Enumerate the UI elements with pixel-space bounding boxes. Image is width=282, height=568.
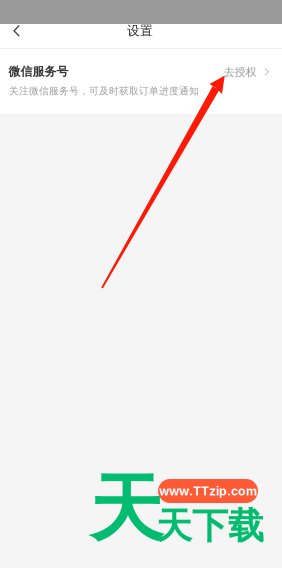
- staticText: 微信服务号: [8, 64, 68, 79]
- button[interactable]: 微信服务号: [0, 49, 282, 114]
- staticText: 天下载: [156, 503, 264, 549]
- staticText: 去授权: [223, 65, 256, 79]
- staticText: 关注微信服务号，可及时获取订单进度通知: [9, 85, 199, 97]
- staticText: 天: [89, 463, 162, 555]
- staticText: 设置: [127, 23, 153, 39]
- button[interactable]: Back: [0, 19, 33, 43]
- staticText: www.TTzip.com: [159, 484, 257, 498]
